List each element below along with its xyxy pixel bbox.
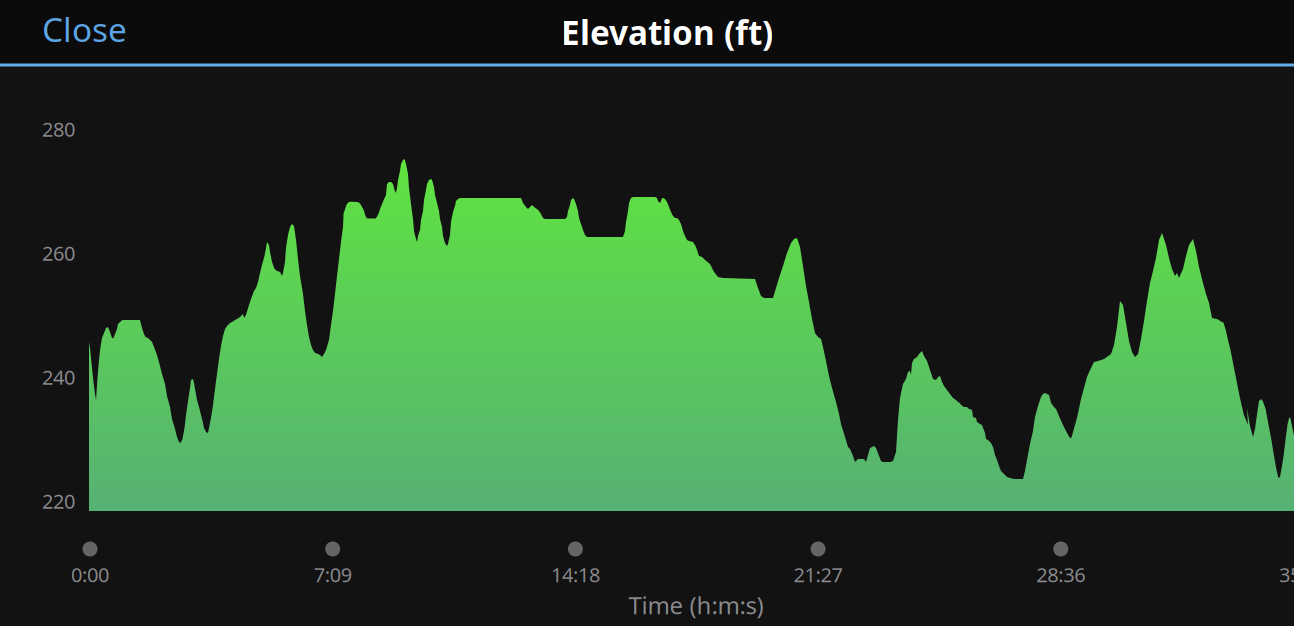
staticText: 7:09 <box>314 561 352 588</box>
staticText: 28:36 <box>1036 561 1085 588</box>
staticText: Time (h:m:s) <box>628 589 763 621</box>
staticText: Elevation (ft) <box>561 10 773 54</box>
staticText: Close <box>42 7 127 51</box>
staticText: 35:45 <box>1279 561 1294 588</box>
staticText: 220 <box>42 488 75 514</box>
staticText: 260 <box>42 240 75 266</box>
button[interactable]: Close <box>42 1 162 57</box>
staticText: 0:00 <box>71 561 109 588</box>
staticText: 21:27 <box>794 561 843 588</box>
staticText: 14:18 <box>551 561 600 588</box>
staticText: 280 <box>42 116 75 142</box>
staticText: 240 <box>42 364 75 390</box>
